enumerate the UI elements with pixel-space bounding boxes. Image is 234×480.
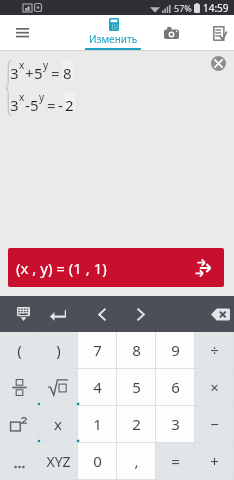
button[interactable]: ,: [117, 443, 155, 479]
staticText: +: [25, 63, 34, 83]
button[interactable]: (x , y) = (1 , 1): [8, 248, 224, 287]
button[interactable]: Backspace: [202, 296, 234, 332]
button[interactable]: Previous: [84, 296, 120, 332]
staticText: x: [19, 58, 25, 72]
staticText: ): [56, 340, 61, 360]
button[interactable]: Clear: [211, 56, 226, 71]
button[interactable]: Menu: [0, 15, 44, 51]
staticText: 8: [63, 63, 72, 83]
staticText: 57%: [174, 2, 192, 14]
staticText: 3: [10, 95, 19, 115]
staticText: x: [19, 90, 25, 104]
staticText: 7: [93, 340, 102, 360]
staticText: 5: [132, 377, 141, 397]
button[interactable]: +: [195, 443, 233, 479]
button[interactable]: 8: [117, 332, 155, 368]
staticText: 3: [10, 63, 19, 83]
staticText: -: [25, 95, 30, 115]
staticText: 8: [132, 340, 141, 360]
button[interactable]: [0, 406, 38, 442]
button[interactable]: Hide keyboard: [5, 296, 41, 332]
staticText: y: [39, 90, 45, 104]
button[interactable]: 0: [78, 443, 116, 479]
staticText: 2: [65, 95, 74, 115]
button[interactable]: (: [0, 332, 38, 368]
button[interactable]: 5: [117, 369, 155, 405]
button[interactable]: [39, 369, 77, 405]
staticText: 4: [93, 377, 102, 397]
staticText: 5: [34, 63, 43, 83]
staticText: (x , y) = (1 , 1): [16, 258, 107, 278]
button[interactable]: 6: [156, 369, 194, 405]
staticText: x: [54, 414, 62, 434]
button[interactable]: ×: [195, 369, 233, 405]
staticText: -: [58, 95, 63, 115]
button[interactable]: Изменить: [85, 15, 141, 51]
staticText: Изменить: [89, 32, 138, 46]
staticText: +: [210, 451, 219, 471]
button[interactable]: =: [156, 443, 194, 479]
staticText: 2: [132, 414, 141, 434]
staticText: XYZ: [46, 452, 71, 471]
staticText: 0: [93, 451, 102, 471]
staticText: =: [47, 95, 56, 115]
button[interactable]: ): [39, 332, 77, 368]
staticText: (: [17, 340, 22, 360]
button[interactable]: 3: [156, 406, 194, 442]
button[interactable]: 4: [78, 369, 116, 405]
staticText: 5: [30, 95, 39, 115]
staticText: ,: [134, 451, 139, 471]
button[interactable]: Enter: [40, 296, 76, 332]
staticText: 3: [171, 414, 180, 434]
button[interactable]: 9: [156, 332, 194, 368]
button[interactable]: ÷: [195, 332, 233, 368]
button[interactable]: 7: [78, 332, 116, 368]
staticText: 14:59: [203, 1, 229, 15]
button[interactable]: Next: [123, 296, 159, 332]
button[interactable]: −: [195, 406, 233, 442]
button[interactable]: 2: [117, 406, 155, 442]
button[interactable]: Camera: [149, 15, 193, 51]
staticText: ÷: [210, 340, 219, 360]
button[interactable]: Solutions: [198, 15, 234, 51]
staticText: 9: [171, 340, 180, 360]
button[interactable]: [0, 443, 38, 479]
staticText: 6: [171, 377, 180, 397]
staticText: 1: [93, 414, 102, 434]
staticText: −: [210, 414, 219, 434]
staticText: ×: [210, 377, 219, 397]
button[interactable]: 1: [78, 406, 116, 442]
staticText: y: [43, 58, 49, 72]
button[interactable]: XYZ: [39, 443, 77, 479]
button[interactable]: [0, 369, 38, 405]
staticText: =: [51, 63, 60, 83]
button[interactable]: x: [39, 406, 77, 442]
staticText: =: [171, 451, 180, 471]
